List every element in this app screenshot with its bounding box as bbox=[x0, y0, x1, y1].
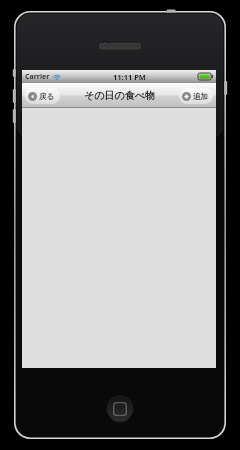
button[interactable]: Add bbox=[179, 88, 213, 104]
staticText: 11:11 PM bbox=[113, 72, 146, 82]
staticText: 追加 bbox=[193, 92, 208, 101]
button[interactable]: Back bbox=[25, 88, 60, 104]
staticText: Carrier bbox=[25, 72, 50, 82]
staticText: その日の食べ物 bbox=[84, 89, 155, 102]
staticText: 戻る bbox=[39, 92, 55, 101]
